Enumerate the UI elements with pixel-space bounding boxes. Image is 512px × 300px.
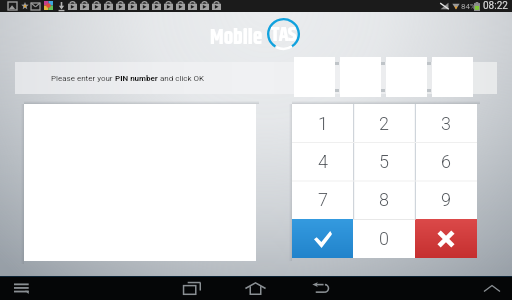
- button[interactable]: 9: [415, 180, 477, 219]
- button[interactable]: 0: [353, 219, 415, 258]
- staticText: 7: [318, 189, 328, 210]
- button[interactable]: Expand: [472, 276, 512, 300]
- button[interactable]: 4: [292, 142, 353, 180]
- staticText: Mobile: [210, 22, 262, 46]
- staticText: PIN number: [115, 74, 158, 83]
- button[interactable]: OK: [292, 219, 353, 258]
- staticText: 3: [441, 113, 451, 134]
- button[interactable]: Recents: [164, 276, 220, 300]
- button[interactable]: Menu: [1, 276, 41, 300]
- staticText: 0: [379, 228, 389, 249]
- staticText: 8: [379, 189, 389, 210]
- staticText: 08:22: [483, 0, 508, 12]
- staticText: 1: [318, 113, 328, 134]
- staticText: Please enter your: [51, 74, 115, 83]
- button[interactable]: 5: [353, 142, 415, 180]
- staticText: 4: [318, 151, 328, 172]
- button[interactable]: 2: [353, 104, 415, 142]
- button[interactable]: 3: [415, 104, 477, 142]
- staticText: 2: [379, 113, 389, 134]
- button[interactable]: 7: [292, 180, 353, 219]
- other: Cancel: [438, 231, 454, 247]
- button[interactable]: Cancel: [415, 219, 477, 258]
- other: OK: [314, 230, 332, 248]
- button[interactable]: 8: [353, 180, 415, 219]
- button[interactable]: Back: [292, 276, 348, 300]
- button[interactable]: 1: [292, 104, 353, 142]
- staticText: 6: [441, 151, 451, 172]
- staticText: 9: [441, 189, 451, 210]
- staticText: 84%: [461, 2, 476, 11]
- button[interactable]: 6: [415, 142, 477, 180]
- staticText: 5: [379, 151, 389, 172]
- staticText: TAS: [271, 20, 296, 51]
- button[interactable]: Home: [227, 276, 283, 300]
- staticText: and click OK: [158, 74, 205, 83]
